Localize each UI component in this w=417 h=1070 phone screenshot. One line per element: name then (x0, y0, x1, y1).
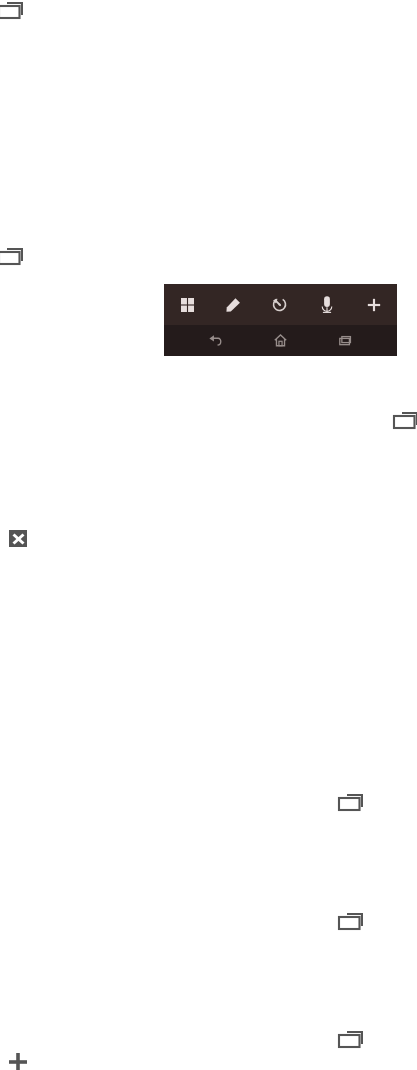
button[interactable]: Close (9, 530, 27, 547)
button[interactable]: Back (199, 325, 231, 356)
button[interactable]: Recent apps (339, 913, 363, 929)
button[interactable]: Recent apps (394, 412, 417, 428)
button[interactable]: Recent apps (0, 248, 23, 264)
button[interactable]: Keypad (164, 284, 210, 325)
button[interactable]: Recent apps (339, 794, 363, 810)
button[interactable]: Add (350, 284, 397, 325)
button[interactable]: Recent apps (0, 2, 23, 18)
button[interactable]: Add (8, 1052, 27, 1070)
button[interactable]: Recent apps (339, 1031, 363, 1047)
button[interactable]: History (256, 284, 303, 325)
button[interactable]: Home (264, 325, 296, 356)
button[interactable]: Voice search (303, 284, 350, 325)
button[interactable]: Recent apps (329, 325, 361, 356)
button[interactable]: Edit (210, 284, 256, 325)
